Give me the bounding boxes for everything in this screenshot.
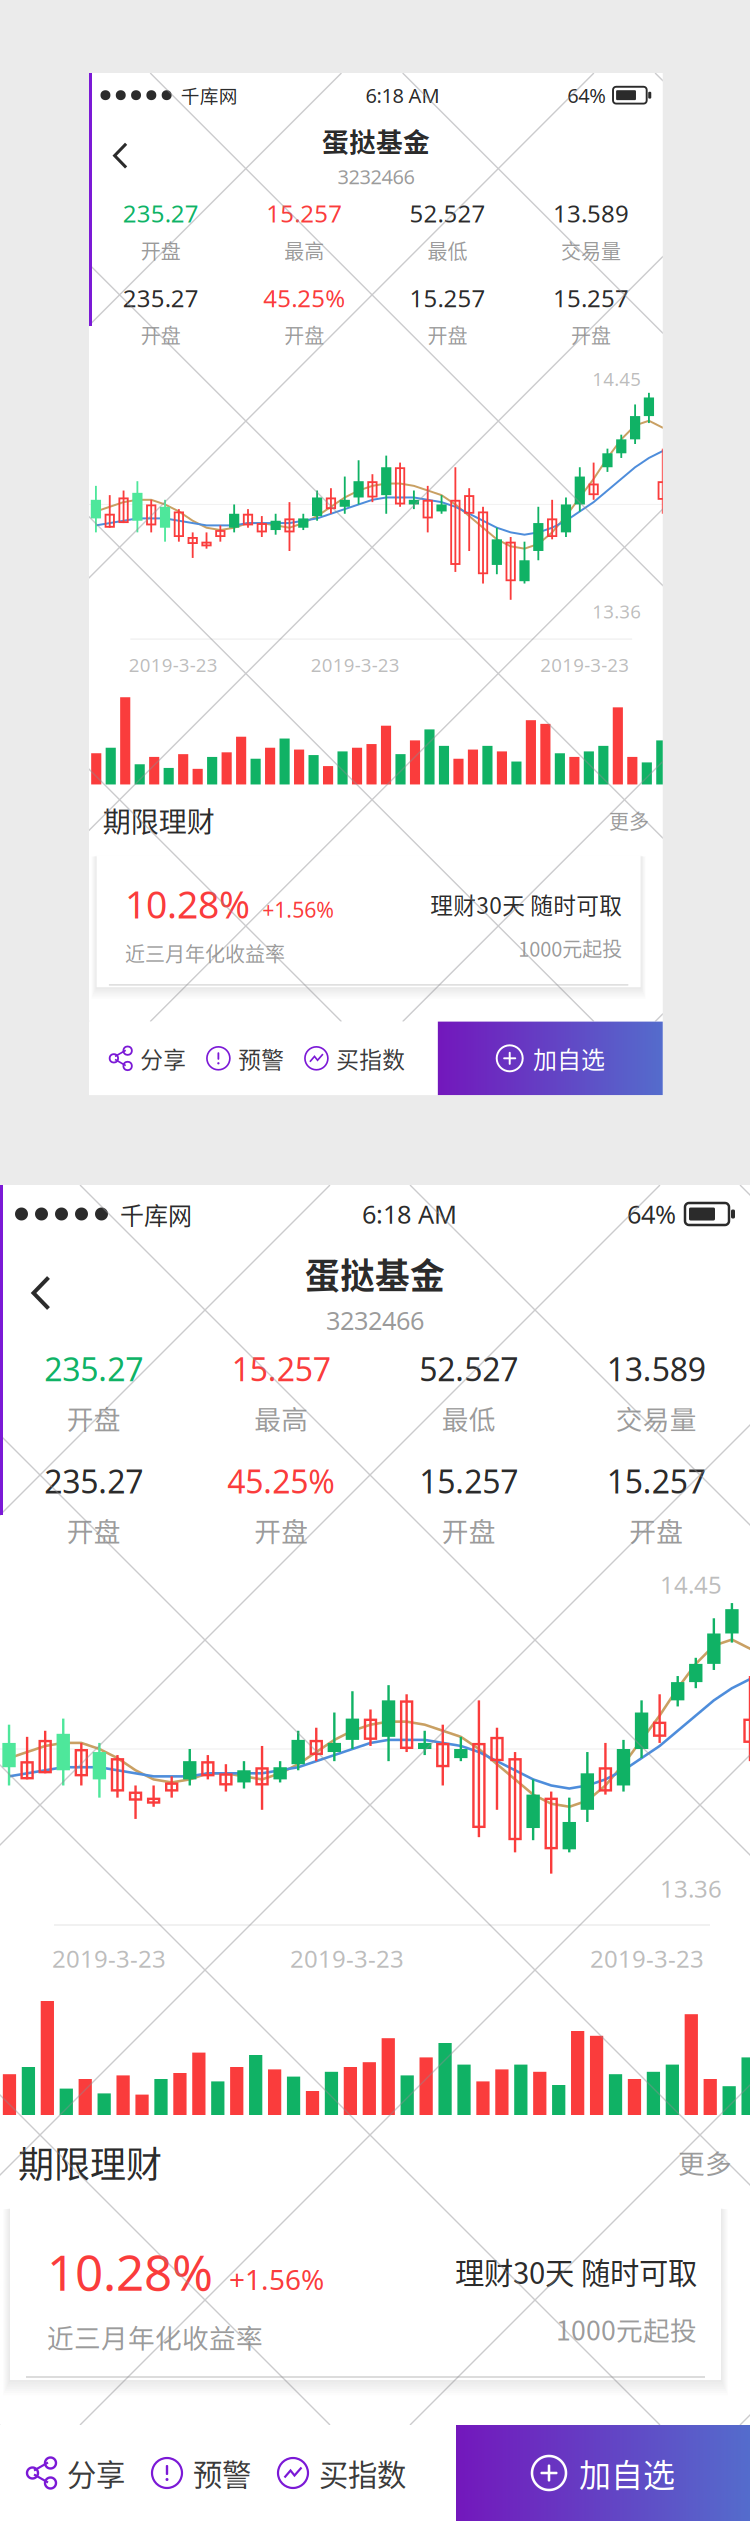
button[interactable]: 更多: [594, 798, 649, 843]
staticText: 交易量: [561, 236, 621, 265]
staticText: 加自选: [579, 2450, 675, 2496]
staticText: 理财30天 随时可取: [455, 2250, 697, 2292]
staticText: 64%: [567, 82, 606, 109]
staticText: 最低: [442, 1399, 496, 1437]
staticText: 3232466: [337, 163, 414, 190]
staticText: 235.27: [44, 1459, 143, 1503]
staticText: 分享: [67, 2452, 125, 2494]
staticText: 45.25%: [263, 281, 345, 314]
button[interactable]: 返回: [89, 124, 152, 187]
staticText: 最高: [284, 236, 324, 265]
staticText: 蛋挞基金: [305, 1249, 445, 1299]
staticText: 更多: [609, 806, 649, 835]
staticText: +1.56%: [262, 895, 334, 924]
staticText: 52.527: [410, 197, 486, 230]
staticText: +1.56%: [229, 2260, 324, 2298]
staticText: 更多: [678, 2143, 732, 2181]
staticText: 15.257: [232, 1347, 331, 1391]
staticText: 10.28%: [47, 2238, 213, 2305]
staticText: 15.257: [410, 281, 486, 314]
staticText: 64%: [627, 1197, 676, 1231]
staticText: 10.28%: [125, 878, 250, 929]
staticText: 蛋挞基金: [322, 121, 430, 160]
staticText: 15.257: [419, 1459, 518, 1503]
staticText: 2019-3-23: [52, 1942, 166, 1975]
staticText: 最低: [428, 236, 468, 265]
button[interactable]: 买指数: [304, 1022, 425, 1095]
staticText: 近三月年化收益率: [47, 2317, 263, 2356]
staticText: 15.257: [607, 1459, 706, 1503]
button[interactable]: 预警: [206, 1022, 304, 1095]
staticText: 1000元起投: [556, 2309, 697, 2348]
button[interactable]: 分享: [26, 2425, 151, 2521]
staticText: 分享: [140, 1042, 186, 1075]
staticText: 期限理财: [18, 2136, 162, 2188]
button[interactable]: 返回: [0, 1252, 82, 1334]
button[interactable]: 10.28%: [17, 2215, 728, 2387]
staticText: 2019-3-23: [590, 1942, 704, 1975]
staticText: 2019-3-23: [540, 652, 629, 677]
staticText: 13.36: [592, 599, 641, 624]
staticText: 6:18 AM: [365, 82, 439, 109]
staticText: 预警: [238, 1042, 284, 1075]
staticText: 13.36: [660, 1872, 722, 1905]
staticText: 买指数: [319, 2452, 406, 2494]
staticText: 开盘: [67, 1511, 121, 1549]
staticText: 开盘: [442, 1511, 496, 1549]
staticText: 加自选: [533, 1041, 605, 1076]
staticText: 2019-3-23: [290, 1942, 404, 1975]
staticText: 235.27: [44, 1347, 143, 1391]
staticText: 开盘: [141, 320, 181, 349]
staticText: 1000元起投: [518, 934, 622, 963]
staticText: 13.589: [553, 197, 629, 230]
button[interactable]: 10.28%: [102, 861, 646, 993]
staticText: 理财30天 随时可取: [430, 888, 622, 920]
staticText: 千库网: [181, 82, 238, 109]
staticText: 3232466: [326, 1303, 424, 1337]
staticText: 2019-3-23: [129, 652, 218, 677]
staticText: 15.257: [553, 281, 629, 314]
staticText: 2019-3-23: [311, 652, 400, 677]
staticText: 千库网: [120, 1197, 192, 1231]
staticText: 最高: [254, 1399, 308, 1437]
staticText: 14.45: [660, 1568, 722, 1601]
staticText: 13.589: [607, 1347, 706, 1391]
staticText: 14.45: [592, 366, 641, 391]
staticText: 开盘: [141, 236, 181, 265]
staticText: 52.527: [419, 1347, 518, 1391]
staticText: 开盘: [629, 1511, 683, 1549]
staticText: 开盘: [254, 1511, 308, 1549]
staticText: 15.257: [266, 197, 342, 230]
staticText: 45.25%: [227, 1459, 335, 1503]
staticText: 预警: [193, 2452, 251, 2494]
staticText: 开盘: [67, 1399, 121, 1437]
staticText: 交易量: [616, 1399, 697, 1437]
staticText: 235.27: [123, 197, 199, 230]
button[interactable]: 加自选: [438, 1022, 663, 1095]
staticText: 开盘: [284, 320, 324, 349]
staticText: 买指数: [336, 1042, 405, 1075]
staticText: 近三月年化收益率: [125, 939, 285, 968]
staticText: 期限理财: [103, 800, 215, 841]
button[interactable]: 更多: [658, 2133, 732, 2191]
button[interactable]: 预警: [151, 2425, 277, 2521]
button[interactable]: 买指数: [277, 2425, 432, 2521]
button[interactable]: 加自选: [456, 2425, 750, 2521]
staticText: 开盘: [571, 320, 611, 349]
staticText: 开盘: [428, 320, 468, 349]
button[interactable]: 分享: [109, 1022, 206, 1095]
staticText: 6:18 AM: [362, 1197, 457, 1231]
staticText: 235.27: [123, 281, 199, 314]
